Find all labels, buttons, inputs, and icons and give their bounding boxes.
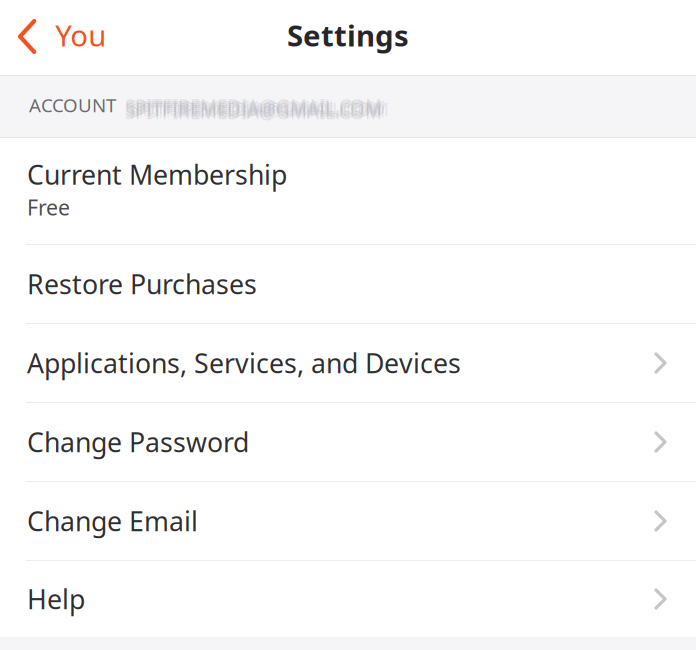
staticText: SPITFIREMEDIA@GMAIL.COM [125,98,382,123]
staticText: SPITFIREMEDIA@GMAIL.COM [125,93,382,117]
staticText: SPITFIREMEDIA@GMAIL.COM [132,96,389,121]
button[interactable]: Change Password [0,403,696,481]
staticText: SPITFIREMEDIA@GMAIL.COM [125,96,382,121]
staticText: SPITFIREMEDIA@GMAIL.COM [125,96,382,121]
staticText: Settings [287,15,409,54]
staticText: SPITFIREMEDIA@GMAIL.COM [125,100,382,124]
button[interactable]: Restore Purchases [0,245,696,323]
staticText: Free [27,193,70,221]
button[interactable]: Back to You [0,11,106,63]
staticText: Change Password [27,424,249,460]
staticText: Applications, Services, and Devices [27,345,461,381]
staticText: ACCOUNT [29,93,116,117]
button[interactable]: Current Membership [0,138,696,244]
staticText: SPITFIREMEDIA@GMAIL.COM [128,94,385,119]
button[interactable]: Change Email [0,482,696,560]
staticText: You [55,15,106,54]
staticText: Current Membership [27,157,287,192]
button[interactable]: Applications, Services, and Devices [0,324,696,402]
button[interactable]: Help [0,561,696,637]
staticText: SPITFIREMEDIA@GMAIL.COM [128,98,385,123]
staticText: Change Email [27,503,198,539]
staticText: Restore Purchases [27,266,257,302]
staticText: SPITFIREMEDIA@GMAIL.COM [125,94,382,119]
staticText: Help [27,581,85,617]
